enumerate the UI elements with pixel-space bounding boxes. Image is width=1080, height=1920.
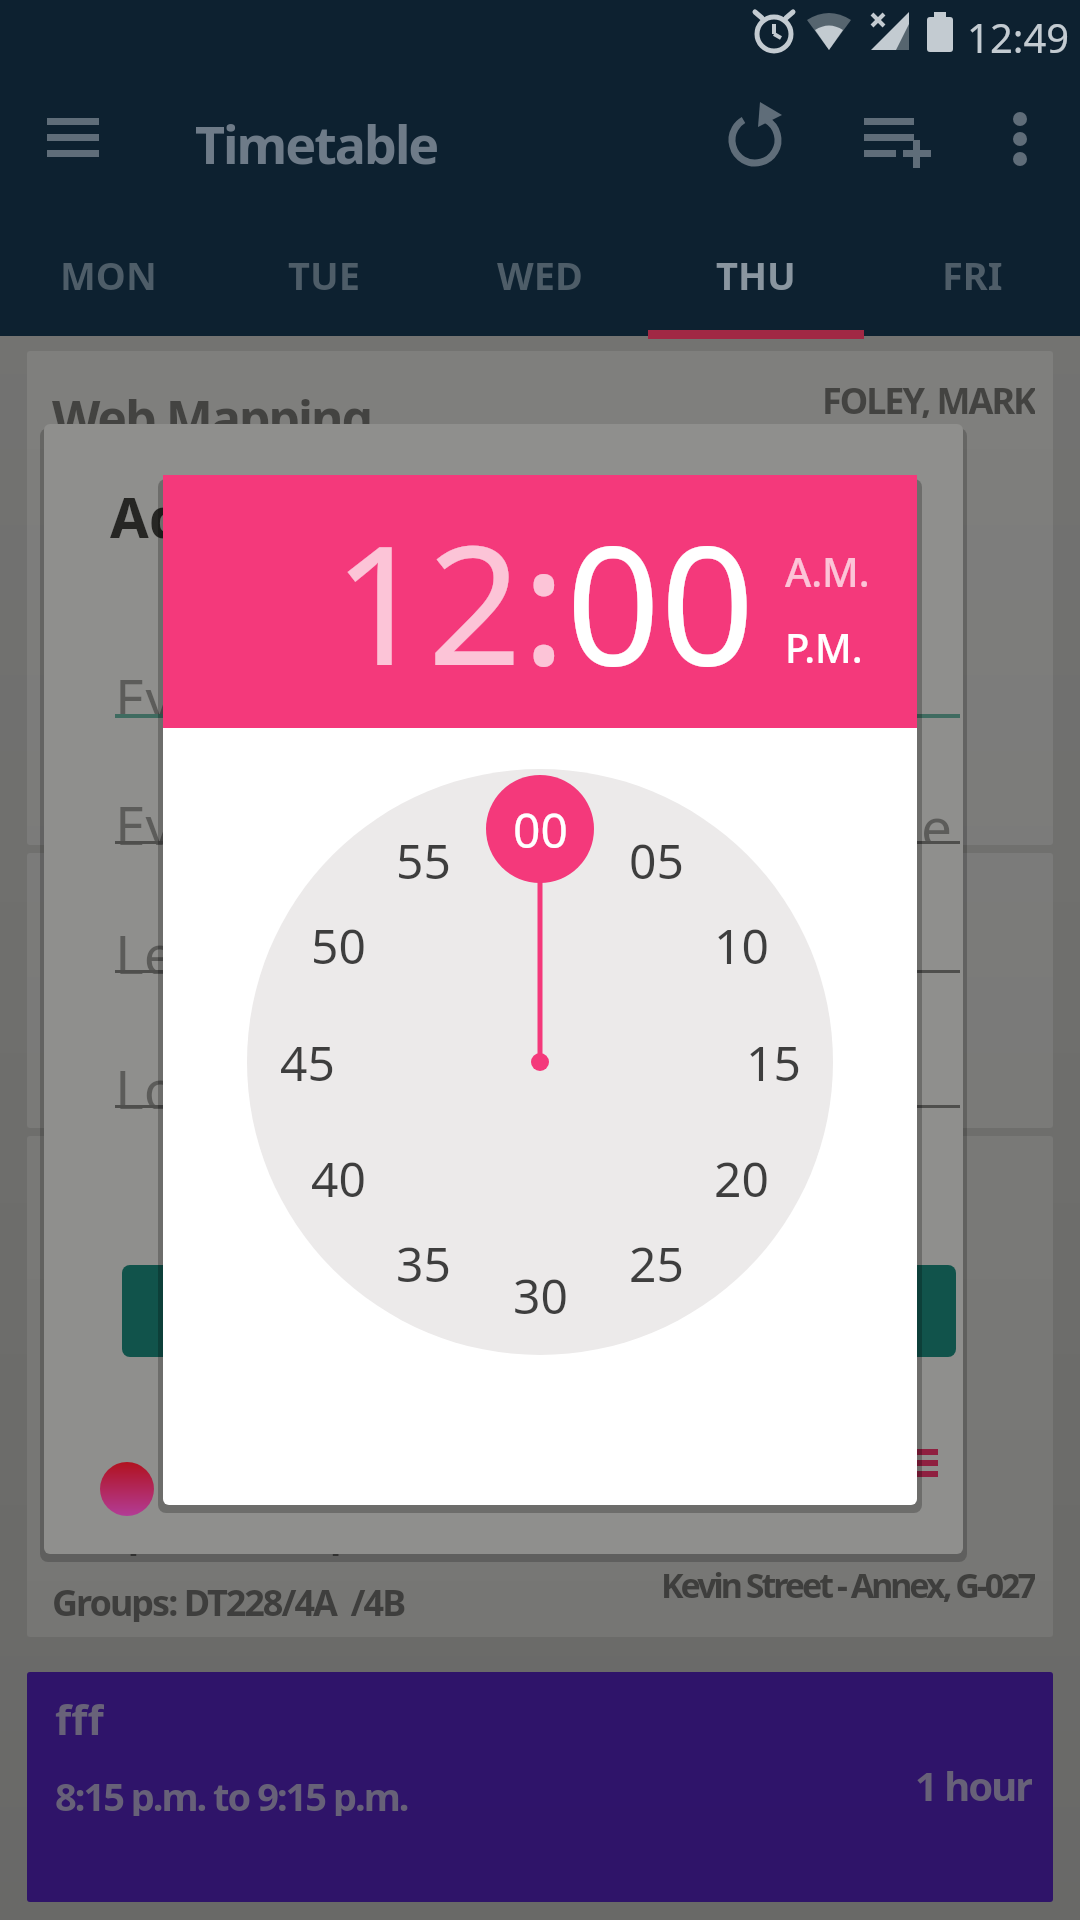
button[interactable]: 35	[378, 1229, 468, 1297]
button[interactable]: THU	[648, 222, 864, 328]
button[interactable]: 15	[728, 1028, 818, 1096]
staticText: Location	[115, 1051, 336, 1109]
staticText: Web Mapping	[52, 384, 372, 440]
staticText: fff	[55, 1690, 104, 1738]
staticText: Add Event	[110, 478, 392, 542]
button[interactable]: 45	[262, 1028, 352, 1096]
button[interactable]: A.M.	[785, 544, 870, 598]
staticText: WED	[497, 249, 583, 301]
staticText: 40	[311, 1146, 366, 1211]
staticText: 35	[396, 1231, 451, 1296]
button[interactable]: 20	[696, 1144, 786, 1212]
staticText: P.M.	[785, 620, 863, 674]
staticText: Event type	[115, 787, 386, 845]
staticText: Kevin Street - Annex, G-027	[661, 1562, 1035, 1604]
button[interactable]: 05	[611, 826, 701, 894]
button[interactable]: 50	[293, 911, 383, 979]
button[interactable]: FRI	[864, 222, 1080, 328]
button[interactable]	[860, 110, 932, 166]
button[interactable]: 40	[293, 1144, 383, 1212]
staticText: 30	[513, 1263, 568, 1328]
button[interactable]: WED	[432, 222, 648, 328]
button[interactable]	[122, 1265, 956, 1357]
button[interactable]: 00	[495, 795, 585, 863]
button[interactable]	[36, 110, 110, 166]
button[interactable]: 55	[378, 826, 468, 894]
staticText: THU	[716, 249, 796, 301]
staticText: 00	[513, 797, 568, 862]
staticText: Event title	[115, 660, 372, 718]
button[interactable]: MON	[0, 222, 216, 328]
staticText: 12:49	[967, 10, 1070, 54]
staticText: 10	[714, 913, 769, 978]
button[interactable]	[27, 1672, 1053, 1902]
button[interactable]: 25	[611, 1229, 701, 1297]
button[interactable]: 10	[696, 911, 786, 979]
staticText: 20	[714, 1146, 769, 1211]
staticText: 12:00	[333, 489, 755, 714]
staticText: FOLEY, MARK	[822, 376, 1035, 418]
button[interactable]: P.M.	[785, 620, 863, 674]
staticText: MON	[60, 249, 157, 301]
staticText: Timetable	[195, 108, 438, 168]
button[interactable]	[725, 110, 785, 166]
staticText: 50	[311, 913, 366, 978]
staticText: 55	[396, 828, 451, 893]
staticText: 15	[746, 1030, 801, 1095]
button[interactable]	[995, 105, 1045, 170]
staticText: 8:15 p.m. to 9:15 p.m.	[55, 1770, 408, 1816]
staticText: Lecturer	[115, 916, 331, 974]
staticText: e	[921, 789, 953, 844]
staticText: TUE	[288, 249, 360, 301]
staticText: A.M.	[785, 544, 870, 598]
button[interactable]: TUE	[216, 222, 432, 328]
button[interactable]: 30	[495, 1261, 585, 1329]
staticText: FRI	[942, 249, 1003, 301]
staticText: 1 hour	[915, 1758, 1032, 1804]
staticText: Groups: DT228/4A /4B	[52, 1578, 405, 1622]
staticText: 25	[629, 1231, 684, 1296]
staticText: 05	[629, 828, 684, 893]
staticText: 8:15 p.m. to 9:15 p.m.	[52, 1508, 405, 1556]
staticText: 45	[280, 1030, 335, 1095]
